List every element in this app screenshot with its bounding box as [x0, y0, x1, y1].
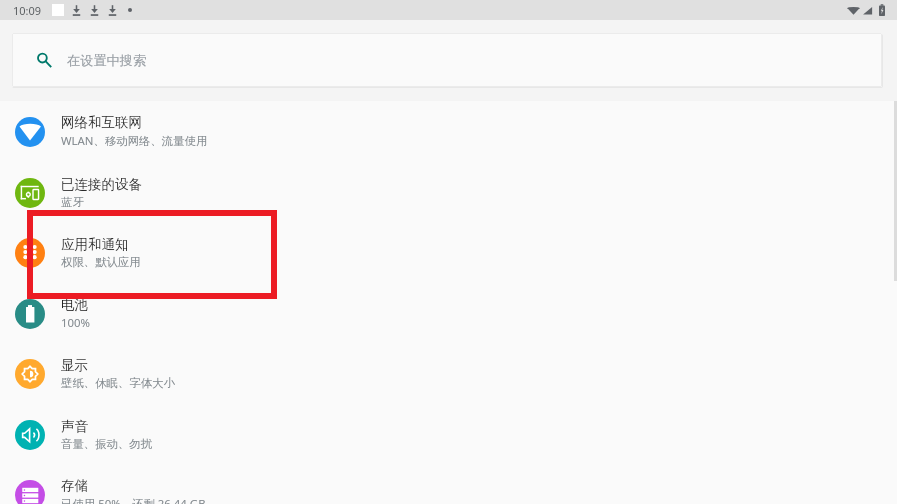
- button[interactable]: 电池: [0, 283, 897, 344]
- staticText: 已使用 50%，还剩 26.44 GB: [61, 496, 206, 504]
- staticText: 100%: [61, 315, 91, 331]
- staticText: 蓝牙: [61, 195, 84, 209]
- button[interactable]: 显示: [0, 343, 897, 404]
- staticText: 声音: [61, 418, 88, 435]
- staticText: 10:09: [13, 3, 42, 18]
- staticText: 在设置中搜索: [67, 52, 147, 69]
- staticText: 显示: [61, 357, 88, 374]
- staticText: 壁纸、休眠、字体大小: [61, 376, 175, 390]
- button[interactable]: 在设置中搜索: [12, 33, 882, 87]
- staticText: 存储: [61, 477, 88, 494]
- staticText: 电池: [61, 296, 88, 313]
- staticText: 音量、振动、勿扰: [61, 437, 153, 451]
- staticText: 权限、默认应用: [61, 255, 141, 269]
- staticText: WLAN、移动网络、流量使用: [61, 133, 208, 149]
- button[interactable]: 存储: [0, 464, 897, 504]
- staticText: 已连接的设备: [61, 176, 142, 193]
- button[interactable]: 应用和通知: [0, 222, 897, 283]
- staticText: 网络和互联网: [61, 114, 142, 131]
- staticText: 应用和通知: [61, 236, 129, 253]
- button[interactable]: 已连接的设备: [0, 162, 897, 223]
- button[interactable]: 网络和互联网: [0, 101, 897, 162]
- button[interactable]: 声音: [0, 404, 897, 465]
